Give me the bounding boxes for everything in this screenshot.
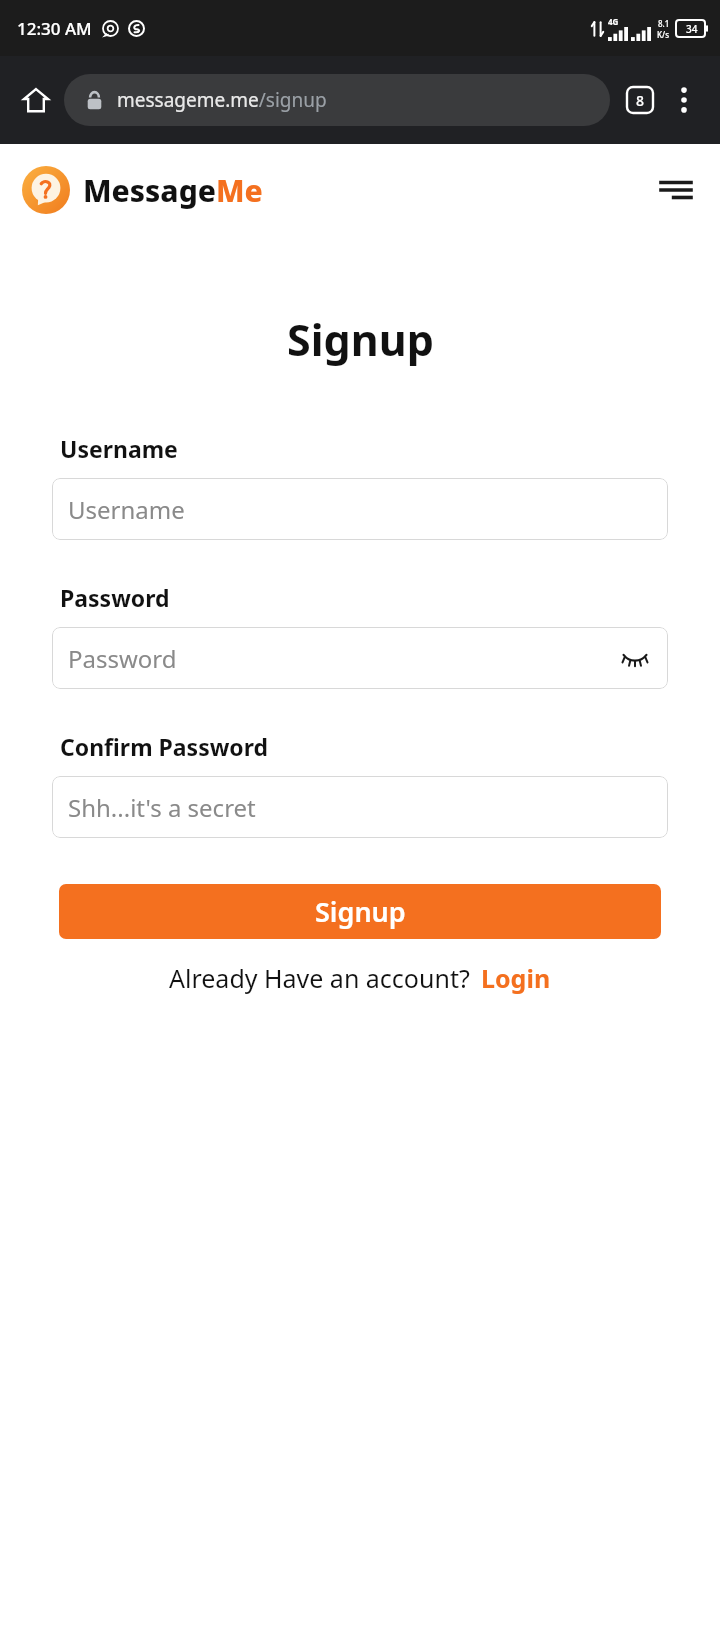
staticText: Password — [60, 582, 170, 613]
button[interactable]: Home — [14, 78, 58, 122]
staticText: 8 — [636, 91, 645, 110]
staticText: Signup — [287, 310, 434, 369]
staticText: MessageMe — [83, 170, 263, 211]
button[interactable]: Menu — [652, 166, 700, 214]
staticText: Shh...it's a secret — [68, 791, 256, 824]
button[interactable]: More options — [662, 78, 706, 122]
button[interactable]: Username — [52, 478, 668, 540]
staticText: Signup — [315, 893, 406, 930]
staticText: K/s — [657, 29, 670, 40]
button[interactable]: Password — [52, 627, 668, 689]
button[interactable]: Login — [481, 961, 551, 995]
button[interactable]: messageme.me/signup — [64, 74, 610, 126]
button[interactable]: Tabs, 8 open — [618, 78, 662, 122]
staticText: 34 — [686, 22, 698, 36]
button[interactable]: MessageMe — [22, 166, 263, 214]
button[interactable]: Signup — [59, 884, 661, 939]
staticText: 8.1 — [658, 18, 670, 29]
staticText: Username — [68, 493, 185, 526]
staticText: 12:30 AM — [17, 17, 92, 40]
staticText: messageme.me/signup — [117, 87, 327, 113]
staticText: 4G — [608, 16, 619, 27]
staticText: Login — [481, 961, 551, 995]
button[interactable]: Shh...it's a secret — [52, 776, 668, 838]
button[interactable]: Show password — [618, 641, 652, 675]
staticText: Confirm Password — [60, 731, 269, 762]
staticText: Already Have an account? — [169, 961, 470, 995]
staticText: Username — [60, 433, 178, 464]
staticText: Password — [68, 642, 177, 675]
